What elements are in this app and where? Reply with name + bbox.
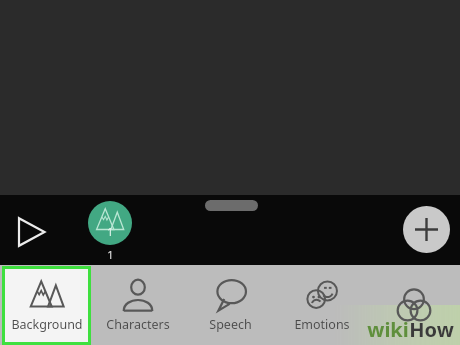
staticText: 1 <box>107 247 114 262</box>
staticText: Background <box>11 316 83 333</box>
button[interactable]: Emotions <box>276 265 368 345</box>
button[interactable]: Colors <box>368 265 460 345</box>
button[interactable]: Play <box>4 203 62 261</box>
button[interactable]: Speech <box>184 265 276 345</box>
staticText: Speech <box>209 316 252 333</box>
button[interactable]: 1 <box>82 201 138 262</box>
staticText: Emotions <box>294 316 350 333</box>
button[interactable]: Background <box>5 269 88 342</box>
staticText: 1 <box>107 225 113 239</box>
staticText: wiki <box>367 316 409 343</box>
staticText: Characters <box>106 316 170 333</box>
button[interactable]: Add <box>403 206 450 253</box>
button[interactable]: Characters <box>92 265 184 345</box>
staticText: How <box>409 316 454 343</box>
